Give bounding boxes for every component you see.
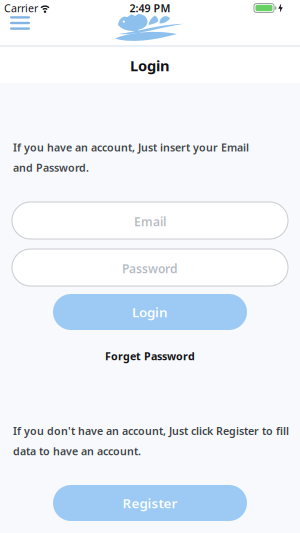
staticText: Forget Password <box>105 349 195 363</box>
staticText: Password <box>122 260 178 276</box>
staticText: and Password. <box>13 160 89 175</box>
button[interactable] <box>6 12 34 34</box>
button[interactable]: Register <box>53 485 247 521</box>
staticText: 2:49 PM <box>129 1 170 15</box>
staticText: Login <box>132 303 168 321</box>
button[interactable]: Login <box>53 294 247 330</box>
staticText: If you don't have an account, Just click… <box>13 424 289 438</box>
staticText: Register <box>122 494 177 512</box>
button[interactable]: Email <box>12 202 288 239</box>
button[interactable]: Forget Password <box>105 349 195 363</box>
staticText: Email <box>134 213 166 229</box>
button[interactable]: Password <box>12 249 288 286</box>
staticText: Login <box>130 56 170 75</box>
staticText: If you have an account, Just insert your… <box>13 140 249 154</box>
staticText: Carrier <box>4 1 38 15</box>
staticText: data to have an account. <box>13 444 141 458</box>
